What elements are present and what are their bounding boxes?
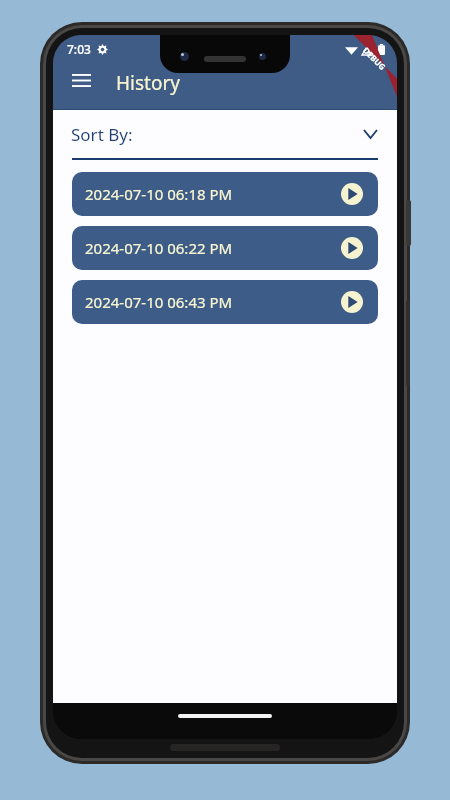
staticText: Sort By:: [71, 123, 133, 146]
button[interactable]: Sort By:: [53, 110, 397, 158]
staticText: 2024-07-10 06:18 PM: [85, 184, 233, 204]
button[interactable]: Play recording: [341, 291, 363, 313]
staticText: 7:03: [67, 41, 91, 57]
staticText: DEBUG: [361, 45, 388, 72]
staticText: 2024-07-10 06:43 PM: [85, 292, 233, 312]
button[interactable]: Play recording: [341, 183, 363, 205]
button[interactable]: Play recording: [341, 237, 363, 259]
button[interactable]: 2024-07-10 06:18 PM: [72, 172, 378, 216]
staticText: 2024-07-10 06:22 PM: [85, 238, 233, 258]
staticText: History: [116, 70, 180, 96]
button[interactable]: 2024-07-10 06:22 PM: [72, 226, 378, 270]
button[interactable]: 2024-07-10 06:43 PM: [72, 280, 378, 324]
button[interactable]: Open navigation menu: [61, 60, 101, 100]
